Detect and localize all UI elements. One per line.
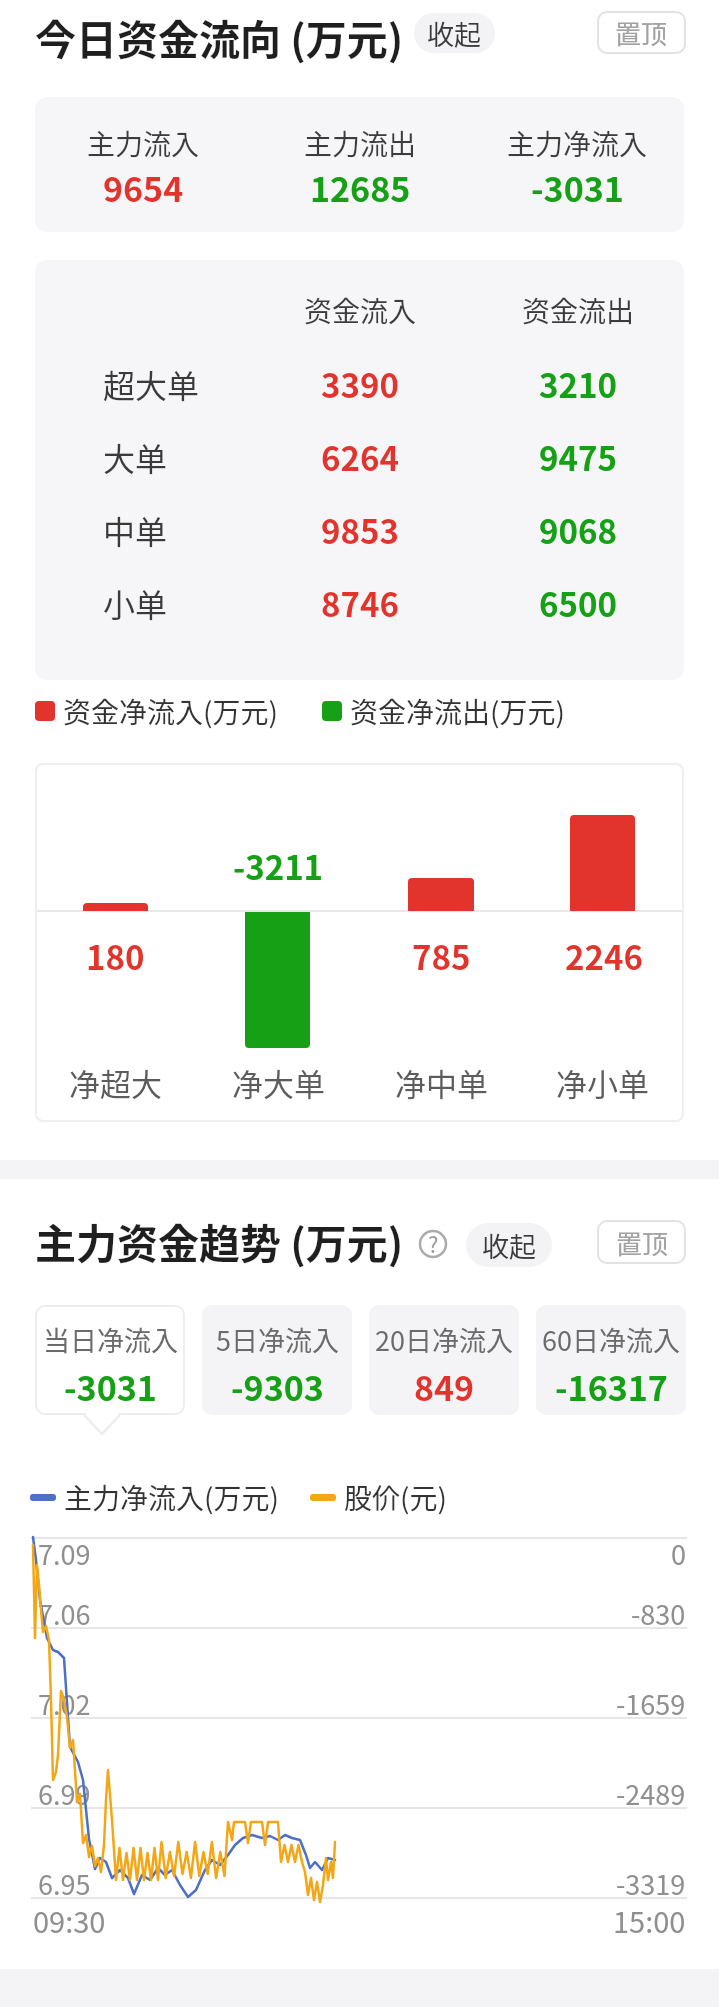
staticText: 今日资金流向 (万元) — [35, 7, 404, 66]
staticText: 小单 — [103, 580, 168, 626]
staticText: 净小单 — [556, 1060, 649, 1105]
staticText: 净中单 — [395, 1060, 488, 1105]
staticText: 180 — [86, 932, 145, 980]
staticText: -830 — [631, 1594, 686, 1633]
staticText: 主力净流入(万元) — [64, 1477, 279, 1518]
staticText: 7.02 — [38, 1684, 91, 1723]
staticText: 2246 — [565, 932, 643, 980]
staticText: 净超大 — [69, 1060, 162, 1105]
staticText: ? — [428, 1227, 439, 1259]
staticText: 15:00 — [613, 1899, 686, 1941]
staticText: 12685 — [310, 163, 411, 212]
staticText: 7.09 — [38, 1534, 91, 1573]
staticText: 资金净流出(万元) — [350, 691, 565, 732]
staticText: -3031 — [64, 1362, 157, 1411]
staticText: 大单 — [103, 434, 168, 480]
staticText: 主力净流入 — [507, 123, 648, 164]
staticText: 主力流出 — [304, 123, 417, 164]
staticText: 3390 — [321, 360, 399, 408]
staticText: 置顶 — [615, 14, 668, 52]
staticText: 6264 — [321, 433, 399, 481]
staticText: 8746 — [321, 579, 399, 627]
staticText: 净大单 — [232, 1060, 325, 1105]
staticText: 849 — [414, 1362, 475, 1411]
staticText: 当日净流入 — [43, 1320, 178, 1359]
staticText: 785 — [412, 932, 471, 980]
staticText: 超大单 — [103, 361, 200, 407]
staticText: 9068 — [539, 506, 617, 554]
staticText: 主力流入 — [87, 123, 200, 164]
staticText: -2489 — [616, 1774, 686, 1813]
staticText: -3319 — [616, 1864, 686, 1903]
staticText: 5日净流入 — [216, 1320, 339, 1359]
staticText: 收起 — [427, 14, 481, 53]
staticText: 资金净流入(万元) — [63, 691, 278, 732]
staticText: 6.95 — [38, 1864, 91, 1903]
staticText: 0 — [671, 1534, 686, 1573]
staticText: 7.06 — [38, 1594, 91, 1633]
staticText: 收起 — [482, 1226, 536, 1265]
staticText: 股价(元) — [344, 1477, 447, 1518]
staticText: 9853 — [321, 506, 399, 554]
staticText: 6.99 — [38, 1774, 91, 1813]
staticText: -3031 — [531, 163, 624, 212]
staticText: 置顶 — [616, 1224, 669, 1262]
staticText: 主力资金趋势 (万元) — [35, 1211, 404, 1270]
staticText: 20日净流入 — [375, 1320, 513, 1359]
staticText: 中单 — [103, 507, 168, 553]
staticText: -1659 — [616, 1684, 686, 1723]
staticText: 9475 — [539, 433, 617, 481]
staticText: 资金流出 — [522, 290, 635, 331]
staticText: 60日净流入 — [542, 1320, 680, 1359]
staticText: 09:30 — [33, 1899, 106, 1941]
staticText: -9303 — [231, 1362, 324, 1411]
staticText: 9654 — [103, 163, 184, 212]
staticText: 6500 — [539, 579, 617, 627]
staticText: 资金流入 — [304, 290, 417, 331]
staticText: -3211 — [233, 842, 324, 890]
staticText: 3210 — [539, 360, 617, 408]
staticText: -16317 — [555, 1362, 668, 1411]
